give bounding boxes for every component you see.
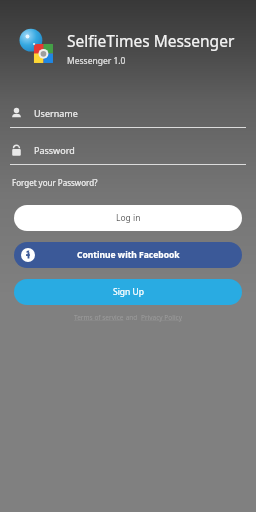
staticText: Password	[34, 144, 75, 156]
button[interactable]: Continue with Facebook	[14, 242, 242, 268]
staticText: Log in	[116, 212, 141, 224]
staticText: Username	[34, 107, 78, 119]
button[interactable]: Terms of service	[74, 313, 124, 322]
button[interactable]: Password	[10, 139, 246, 165]
button[interactable]: Log in	[14, 205, 242, 231]
staticText: Privacy Policy	[141, 313, 183, 322]
staticText: Terms of service	[74, 313, 124, 322]
staticText: Messenger 1.0	[67, 55, 126, 67]
button[interactable]: Username	[10, 102, 246, 128]
staticText: and	[124, 313, 141, 322]
button[interactable]: Sign Up	[14, 279, 242, 305]
staticText: Forget your Password?	[12, 177, 98, 188]
staticText: Continue with Facebook	[77, 249, 180, 261]
staticText: Sign Up	[113, 286, 144, 298]
button[interactable]: Forget your Password?	[12, 175, 98, 190]
button[interactable]: Privacy Policy	[141, 313, 183, 322]
staticText: SelfieTimes Messenger	[67, 30, 235, 51]
